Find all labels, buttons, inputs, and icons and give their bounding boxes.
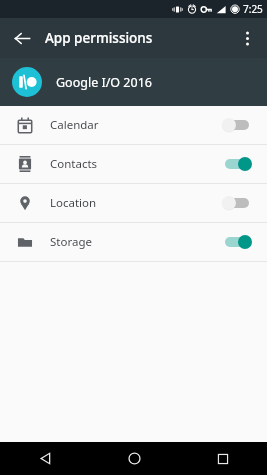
- button[interactable]: Back: [25, 442, 65, 475]
- button[interactable]: Location off: [217, 188, 257, 218]
- staticText: 7:25: [243, 2, 263, 16]
- staticText: Location: [50, 195, 97, 211]
- button[interactable]: Recent apps: [203, 442, 243, 475]
- button[interactable]: Storage: [0, 223, 267, 261]
- button[interactable]: Calendar off: [217, 110, 257, 140]
- button[interactable]: Home: [114, 442, 154, 475]
- button[interactable]: Google I/O 2016: [0, 58, 267, 106]
- button[interactable]: Contacts on: [217, 149, 257, 179]
- button[interactable]: Location: [0, 184, 267, 222]
- staticText: Calendar: [50, 117, 99, 133]
- button[interactable]: Contacts: [0, 145, 267, 183]
- button[interactable]: Storage on: [217, 227, 257, 257]
- button[interactable]: More options: [231, 22, 263, 54]
- staticText: App permissions: [45, 29, 153, 47]
- button[interactable]: Navigate up: [6, 22, 38, 54]
- staticText: Google I/O 2016: [56, 74, 152, 91]
- button[interactable]: Calendar: [0, 106, 267, 144]
- staticText: Contacts: [50, 156, 98, 172]
- staticText: Storage: [50, 234, 92, 250]
